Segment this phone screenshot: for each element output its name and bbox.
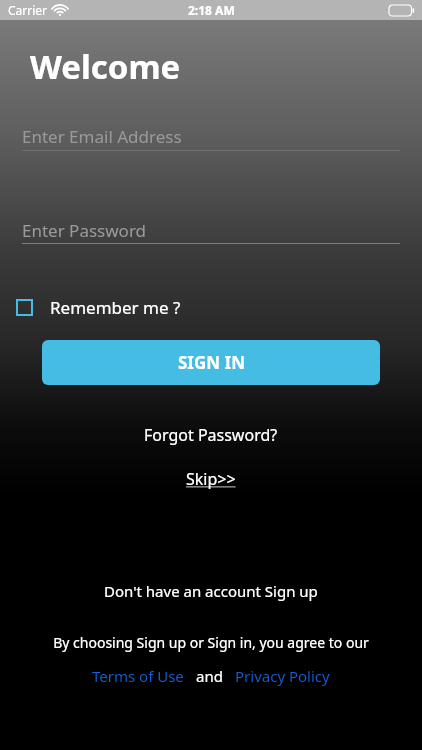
staticText: Enter Password [22, 219, 147, 242]
staticText: Forgot Password? [144, 424, 278, 446]
button[interactable]: Terms of Use [90, 663, 186, 689]
staticText: and [196, 666, 223, 686]
staticText: Enter Email Address [22, 125, 182, 148]
staticText: Terms of Use [92, 666, 184, 686]
staticText: 2:18 AM [188, 2, 235, 18]
button[interactable]: Enter Password [22, 212, 400, 248]
staticText: Don't have an account Sign up [104, 581, 318, 601]
button[interactable]: Forgot Password? [0, 422, 422, 448]
button[interactable]: SIGN IN [42, 340, 380, 385]
staticText: SIGN IN [178, 351, 245, 374]
staticText: Carrier [8, 2, 48, 18]
button[interactable]: Don't have an account Sign up [0, 578, 422, 604]
button[interactable]: Skip>> [0, 466, 422, 492]
staticText: Welcome [30, 44, 181, 89]
staticText: Skip>> [186, 468, 236, 490]
button[interactable]: Privacy Policy [233, 663, 332, 689]
button[interactable]: Enter Email Address [22, 118, 400, 154]
button[interactable]: Remember me ? [16, 293, 181, 321]
staticText: Privacy Policy [235, 666, 330, 686]
staticText: Remember me ? [50, 296, 181, 319]
staticText: By choosing Sign up or Sign in, you agre… [53, 633, 369, 652]
